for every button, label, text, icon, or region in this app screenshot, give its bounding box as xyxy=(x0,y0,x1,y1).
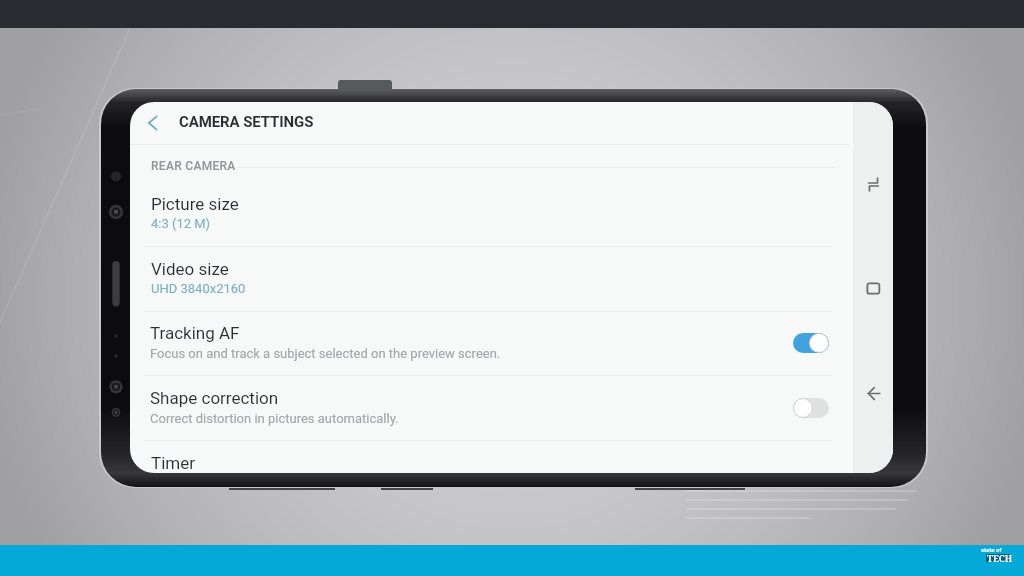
button[interactable]: Switch off xyxy=(793,398,829,418)
button[interactable] xyxy=(130,311,853,375)
staticText: Focus on and track a subject selected on… xyxy=(150,346,501,361)
staticText: Shape correction xyxy=(150,388,279,408)
button[interactable] xyxy=(130,144,853,246)
staticText: Picture size xyxy=(151,194,239,214)
button[interactable]: Home xyxy=(856,271,890,305)
button[interactable]: Navigate up xyxy=(130,102,176,144)
staticText: state of xyxy=(981,546,1002,553)
staticText: Video size xyxy=(151,259,229,279)
button[interactable]: Back xyxy=(856,376,890,410)
staticText: UHD 3840x2160 xyxy=(151,281,246,296)
staticText: TECH xyxy=(987,552,1013,564)
button[interactable] xyxy=(130,375,853,442)
button[interactable] xyxy=(130,246,853,311)
staticText: CAMERA SETTINGS xyxy=(179,113,314,131)
staticText: Correct distortion in pictures automatic… xyxy=(150,411,399,426)
staticText: Timer xyxy=(151,453,195,473)
staticText: 4:3 (12 M) xyxy=(151,216,211,231)
staticText: Tracking AF xyxy=(150,323,240,343)
button[interactable]: Switch on xyxy=(793,333,829,353)
button[interactable] xyxy=(130,440,853,473)
staticText: REAR CAMERA xyxy=(151,159,236,173)
button[interactable]: Recents xyxy=(856,167,890,201)
